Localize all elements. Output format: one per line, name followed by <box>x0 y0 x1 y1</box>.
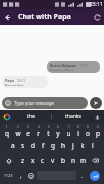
staticText: p <box>96 129 100 138</box>
staticText: w <box>15 129 21 138</box>
button[interactable]: m <box>78 153 88 168</box>
button[interactable]: 6 <box>53 124 63 138</box>
staticText: 23:11 <box>80 64 89 68</box>
staticText: k <box>81 141 85 150</box>
staticText: . <box>81 172 83 180</box>
button[interactable]: Enter <box>90 171 100 181</box>
staticText: thanks <box>65 113 81 120</box>
staticText: Bassig Sets <box>5 83 24 86</box>
staticText: a <box>11 141 15 150</box>
staticText: c <box>41 156 45 165</box>
button[interactable]: Voice input <box>93 113 101 121</box>
staticText: 8 <box>77 125 79 129</box>
staticText: d <box>31 141 35 150</box>
staticText: e <box>26 129 30 138</box>
button[interactable]: Papa <box>2 76 48 88</box>
button[interactable]: 3 <box>23 124 33 138</box>
button[interactable]: the <box>11 113 51 120</box>
staticText: l <box>92 141 94 150</box>
staticText: 0 <box>97 125 99 129</box>
staticText: i <box>77 129 79 138</box>
staticText: z <box>21 156 25 165</box>
staticText: 1 <box>6 125 8 129</box>
button[interactable]: ?123 <box>1 168 16 183</box>
staticText: f <box>42 141 45 150</box>
button[interactable]: Back <box>0 10 14 24</box>
staticText: 7 <box>68 125 70 129</box>
staticText: x <box>31 156 35 165</box>
button[interactable]: k <box>78 138 88 153</box>
button[interactable]: 5 <box>43 124 53 138</box>
button[interactable]: 4 <box>33 124 43 138</box>
staticText: t <box>47 129 50 138</box>
button[interactable]: 2 <box>12 124 23 138</box>
button[interactable]: d <box>28 138 38 153</box>
button[interactable]: a <box>7 138 18 153</box>
button[interactable]: 7 <box>63 124 73 138</box>
button[interactable]: 1 <box>1 124 12 138</box>
button[interactable]: , <box>16 168 26 183</box>
button[interactable]: h <box>58 138 68 153</box>
staticText: Type your message <box>14 100 54 106</box>
button[interactable]: s <box>18 138 28 153</box>
button[interactable]: v <box>48 153 58 168</box>
button[interactable]: j <box>68 138 78 153</box>
staticText: u <box>66 129 71 138</box>
staticText: Papa <box>5 78 14 83</box>
button[interactable]: x <box>28 153 38 168</box>
button[interactable]: Type your message <box>2 97 88 109</box>
button[interactable]: Aneta Belgano <box>47 61 100 73</box>
staticText: g <box>51 141 55 150</box>
staticText: j <box>72 141 74 150</box>
button[interactable]: z <box>17 153 28 168</box>
staticText: 5 <box>48 125 50 129</box>
staticText: Chat with Papa <box>18 12 71 22</box>
button[interactable]: Send <box>90 97 102 109</box>
staticText: 23:11 <box>17 79 26 83</box>
staticText: q <box>5 129 9 138</box>
button[interactable]: b <box>58 153 68 168</box>
staticText: 9 <box>87 125 89 129</box>
button[interactable]: . <box>77 168 87 183</box>
button[interactable]: 9 <box>83 124 93 138</box>
staticText: v <box>51 156 55 165</box>
staticText: Good to Papa <box>50 68 73 71</box>
button[interactable]: Backspace <box>88 153 103 168</box>
button[interactable]: Emoji <box>26 168 36 183</box>
button[interactable]: n <box>68 153 78 168</box>
button[interactable]: Google <box>3 113 11 121</box>
staticText: ?123 <box>4 173 13 178</box>
staticText: m <box>80 156 87 165</box>
button[interactable]: l <box>88 138 98 153</box>
staticText: 23:11 <box>90 1 103 8</box>
staticText: , <box>20 172 22 180</box>
staticText: o <box>86 129 90 138</box>
staticText: 4 <box>38 125 40 129</box>
button[interactable]: 8 <box>73 124 83 138</box>
button[interactable]: Refresh <box>90 10 104 24</box>
button[interactable]: g <box>48 138 58 153</box>
staticText: s <box>21 141 25 150</box>
button[interactable]: 0 <box>93 124 103 138</box>
staticText: h <box>61 141 66 150</box>
staticText: b <box>61 156 65 165</box>
staticText: y <box>56 129 60 138</box>
button[interactable]: Shift <box>1 153 17 168</box>
button[interactable]: c <box>38 153 48 168</box>
staticText: n <box>71 156 76 165</box>
staticText: 3 <box>27 125 29 129</box>
staticText: Aneta Belgano <box>50 63 77 68</box>
staticText: r <box>37 129 40 138</box>
button[interactable]: thanks <box>52 113 93 120</box>
button[interactable]: f <box>38 138 48 153</box>
staticText: 6 <box>57 125 59 129</box>
staticText: the <box>27 113 35 120</box>
staticText: 2 <box>17 125 19 129</box>
